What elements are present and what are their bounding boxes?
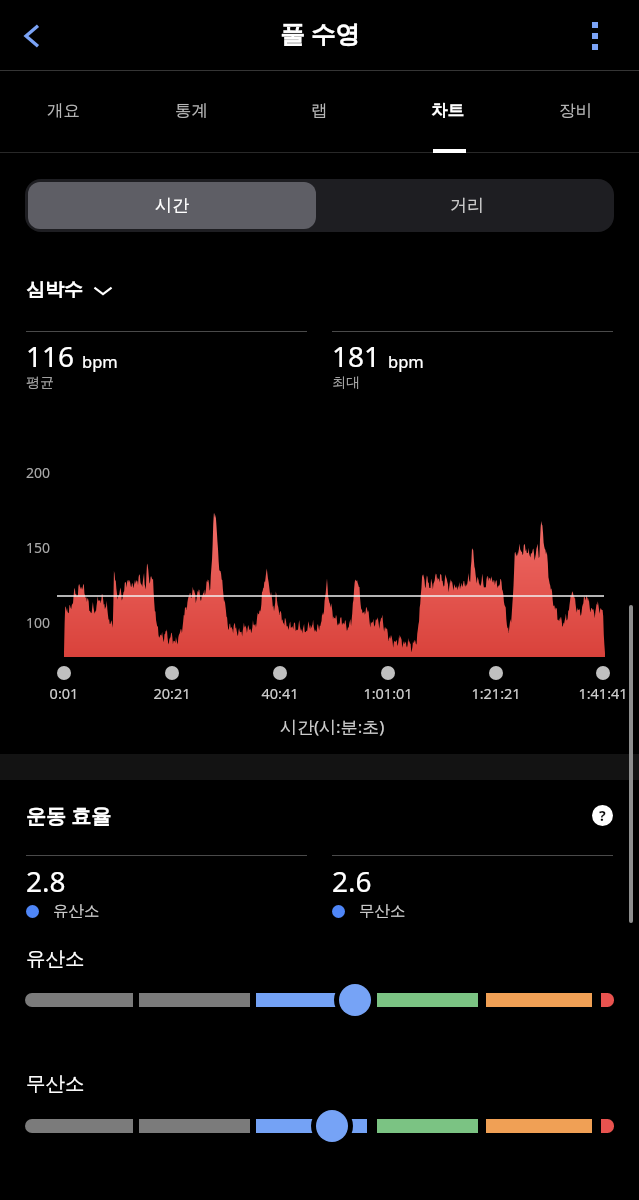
button[interactable]: 개요 [0, 72, 127, 153]
button[interactable]: 장비 [511, 72, 639, 153]
button[interactable]: Back [6, 10, 58, 62]
staticText: 116 [26, 337, 75, 375]
staticText: 200 [26, 463, 51, 482]
button[interactable]: Help [592, 805, 613, 826]
staticText: 1:21:21 [456, 683, 536, 703]
staticText: 통계 [175, 100, 208, 121]
button[interactable]: 시간 [28, 182, 316, 229]
staticText: 150 [26, 538, 51, 557]
staticText: 40:41 [240, 683, 320, 703]
button[interactable]: 거리 [319, 179, 614, 232]
button[interactable]: 통계 [127, 72, 255, 153]
staticText: 1:41:41 [563, 683, 639, 703]
staticText: bpm [388, 350, 424, 372]
staticText: bpm [82, 350, 118, 372]
staticText: 최대 [332, 374, 360, 392]
staticText: 100 [26, 613, 51, 632]
button[interactable]: 심박수 [26, 277, 116, 303]
button[interactable]: 181 [332, 331, 613, 393]
staticText: 시간 [155, 195, 189, 216]
staticText: 장비 [559, 100, 592, 121]
staticText: 개요 [47, 100, 80, 121]
staticText: 무산소 [359, 901, 406, 921]
staticText: 평균 [26, 374, 54, 392]
staticText: 심박수 [26, 278, 83, 302]
button[interactable]: 2.6 [332, 855, 613, 922]
staticText: 0:01 [24, 683, 104, 703]
staticText: 거리 [450, 195, 484, 216]
staticText: 시간(시:분:초) [280, 715, 385, 738]
staticText: 운동 효율 [26, 802, 112, 829]
staticText: 2.6 [332, 862, 372, 900]
staticText: ? [599, 806, 606, 825]
staticText: 랩 [311, 100, 328, 121]
staticText: 무산소 [26, 1071, 85, 1096]
staticText: 풀 수영 [280, 17, 360, 50]
staticText: 유산소 [26, 946, 85, 971]
button[interactable]: 차트 [383, 72, 511, 153]
staticText: 181 [332, 337, 381, 375]
button[interactable]: 116 [26, 331, 307, 393]
button[interactable]: 2.8 [26, 855, 307, 922]
button[interactable] [0, 1102, 639, 1150]
staticText: 1:01:01 [348, 683, 428, 703]
button[interactable]: More options [569, 10, 621, 62]
staticText: 유산소 [53, 901, 100, 921]
button[interactable] [0, 976, 639, 1024]
staticText: 차트 [431, 100, 464, 121]
button[interactable]: 랩 [255, 72, 383, 153]
staticText: 20:21 [132, 683, 212, 703]
staticText: 2.8 [26, 862, 66, 900]
